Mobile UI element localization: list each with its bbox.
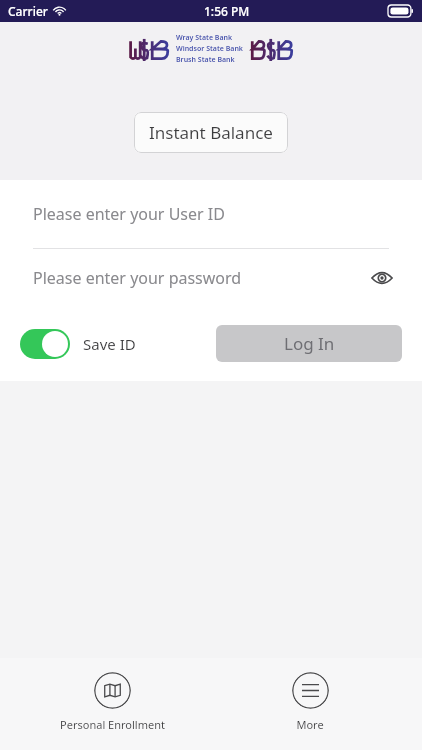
staticText: Wray State Bank — [176, 33, 233, 43]
staticText: Brush State Bank — [176, 55, 235, 65]
button[interactable]: Log In — [216, 325, 402, 362]
staticText: Save ID — [83, 334, 136, 354]
staticText: 1:56 PM — [204, 3, 250, 19]
button[interactable]: Save ID — [20, 329, 136, 359]
button[interactable]: Personal Enrollment — [27, 670, 197, 734]
button[interactable]: Please enter your password — [0, 249, 422, 306]
button[interactable]: More — [225, 670, 395, 734]
button[interactable]: Show password — [366, 262, 398, 294]
button[interactable]: Please enter your User ID — [0, 180, 422, 248]
staticText: Log In — [284, 332, 335, 355]
staticText: Carrier — [8, 3, 48, 19]
staticText: Personal Enrollment — [60, 717, 165, 732]
staticText: Please enter your User ID — [33, 203, 225, 225]
staticText: Windsor State Bank — [176, 44, 243, 54]
staticText: Instant Balance — [149, 121, 273, 144]
button[interactable]: Instant Balance — [134, 112, 288, 153]
staticText: Please enter your password — [33, 267, 242, 289]
staticText: More — [296, 717, 324, 732]
